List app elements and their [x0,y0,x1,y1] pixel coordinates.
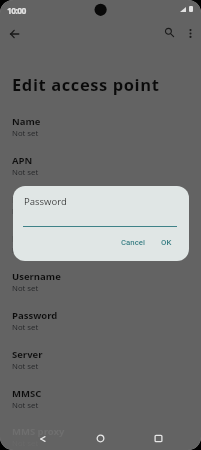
staticText: Not set [12,206,39,217]
button[interactable]: MMSC [0,387,201,425]
button[interactable]: Proxy [0,193,201,231]
staticText: Name [12,115,41,128]
staticText: Password [12,309,58,322]
staticText: Not set [12,361,39,372]
button[interactable]: OK [156,235,177,250]
button[interactable]: Port [0,232,201,270]
button[interactable]: Cancel [116,235,150,250]
staticText: MMSC [12,387,42,400]
staticText: Not set [12,128,39,139]
button[interactable]: Recent apps [148,428,169,449]
staticText: 10:00 [7,5,26,17]
button[interactable]: APN [0,154,201,192]
staticText: Not set [12,400,39,411]
button[interactable]: Server [0,348,201,386]
staticText: MMS proxy [12,425,65,438]
staticText: Password [24,195,67,208]
staticText: Cancel [121,238,145,247]
staticText: Not set [12,245,39,256]
staticText: Edit access point [12,73,160,95]
staticText: Not set [12,167,39,178]
button[interactable]: Home [90,428,111,449]
button[interactable]: Search [159,22,180,43]
button[interactable]: More options [180,23,200,43]
button[interactable]: Username [0,270,201,308]
staticText: APN [12,154,33,167]
button[interactable]: Name [0,115,201,153]
staticText: Proxy [12,193,39,206]
staticText: Server [12,348,43,361]
staticText: Port [12,232,33,245]
button[interactable]: Password [0,309,201,347]
button[interactable]: MMS proxy [0,425,201,450]
staticText: Username [12,270,61,283]
button[interactable]: Back [32,428,53,449]
staticText: OK [161,238,172,247]
button[interactable]: Navigate up [4,23,25,44]
staticText: Not set [12,322,39,333]
staticText: Not set [12,283,39,294]
